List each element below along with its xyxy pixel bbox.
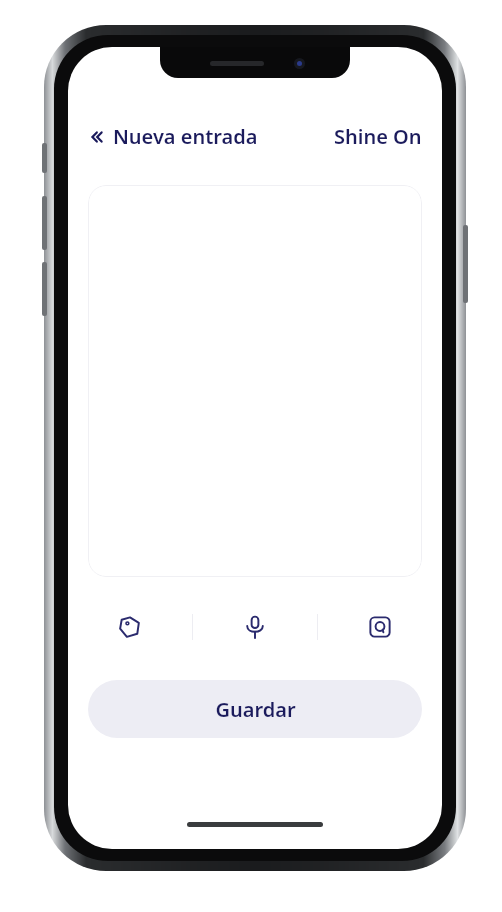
button[interactable]: Back — [82, 117, 262, 156]
button[interactable]: Shine On — [328, 117, 428, 156]
button[interactable]: Camera — [318, 604, 442, 650]
button[interactable]: Guardar — [88, 680, 422, 738]
staticText: Nueva entrada — [113, 123, 258, 150]
other: Back — [86, 127, 106, 147]
button[interactable]: Add tag — [68, 604, 192, 650]
button[interactable]: Voice input — [193, 604, 317, 650]
staticText: Shine On — [334, 123, 422, 150]
staticText: Guardar — [215, 696, 296, 723]
